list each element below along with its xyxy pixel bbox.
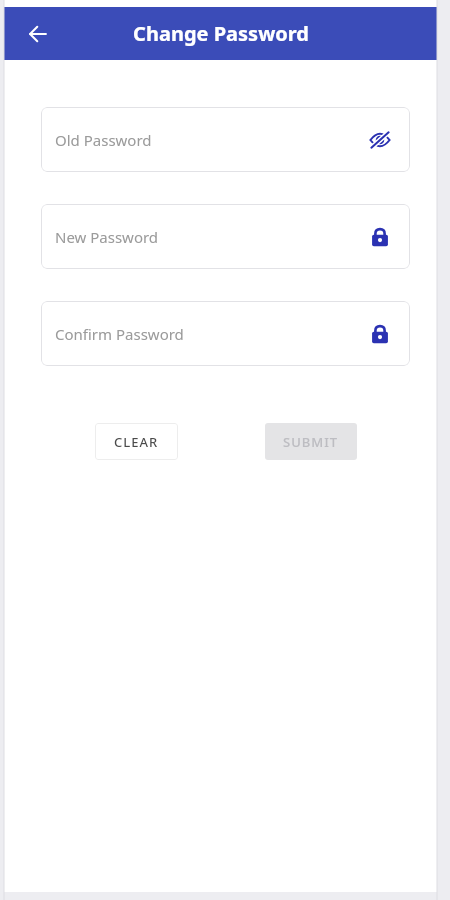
staticText: Change Password <box>133 20 309 47</box>
button[interactable]: CLEAR <box>95 423 178 460</box>
button[interactable]: Old Password <box>41 107 410 172</box>
button[interactable]: SUBMIT <box>265 423 357 460</box>
button[interactable]: New Password <box>41 204 410 269</box>
staticText: CLEAR <box>114 433 159 451</box>
other: Toggle password visibility <box>366 126 394 154</box>
staticText: SUBMIT <box>283 433 339 451</box>
staticText: Confirm Password <box>55 324 366 344</box>
other: Password locked <box>366 223 394 251</box>
button[interactable]: Confirm Password <box>41 301 410 366</box>
staticText: Old Password <box>55 130 366 150</box>
button[interactable]: Back <box>16 12 60 56</box>
other: Password locked <box>366 320 394 348</box>
staticText: New Password <box>55 227 366 247</box>
